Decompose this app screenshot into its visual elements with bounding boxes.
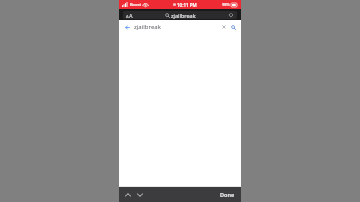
staticText: Done <box>220 191 235 198</box>
staticText: Boost <box>130 2 141 7</box>
button[interactable]: Reload page <box>228 12 234 18</box>
staticText: A <box>126 14 129 19</box>
staticText: 98% <box>222 2 230 7</box>
button[interactable]: Text size options <box>126 12 133 19</box>
button[interactable]: Text size options <box>123 11 237 19</box>
button[interactable]: Search <box>229 23 237 31</box>
button[interactable]: Back <box>123 23 131 31</box>
button[interactable]: zjailbreak <box>134 23 220 31</box>
staticText: A <box>129 12 133 19</box>
button[interactable]: Clear search <box>220 23 228 31</box>
button[interactable]: Previous result <box>123 190 132 199</box>
button[interactable]: Next result <box>135 190 144 199</box>
button[interactable]: Done <box>218 190 237 199</box>
staticText: 10:11 PM <box>177 2 197 8</box>
staticText: zjailbreak <box>171 12 196 19</box>
